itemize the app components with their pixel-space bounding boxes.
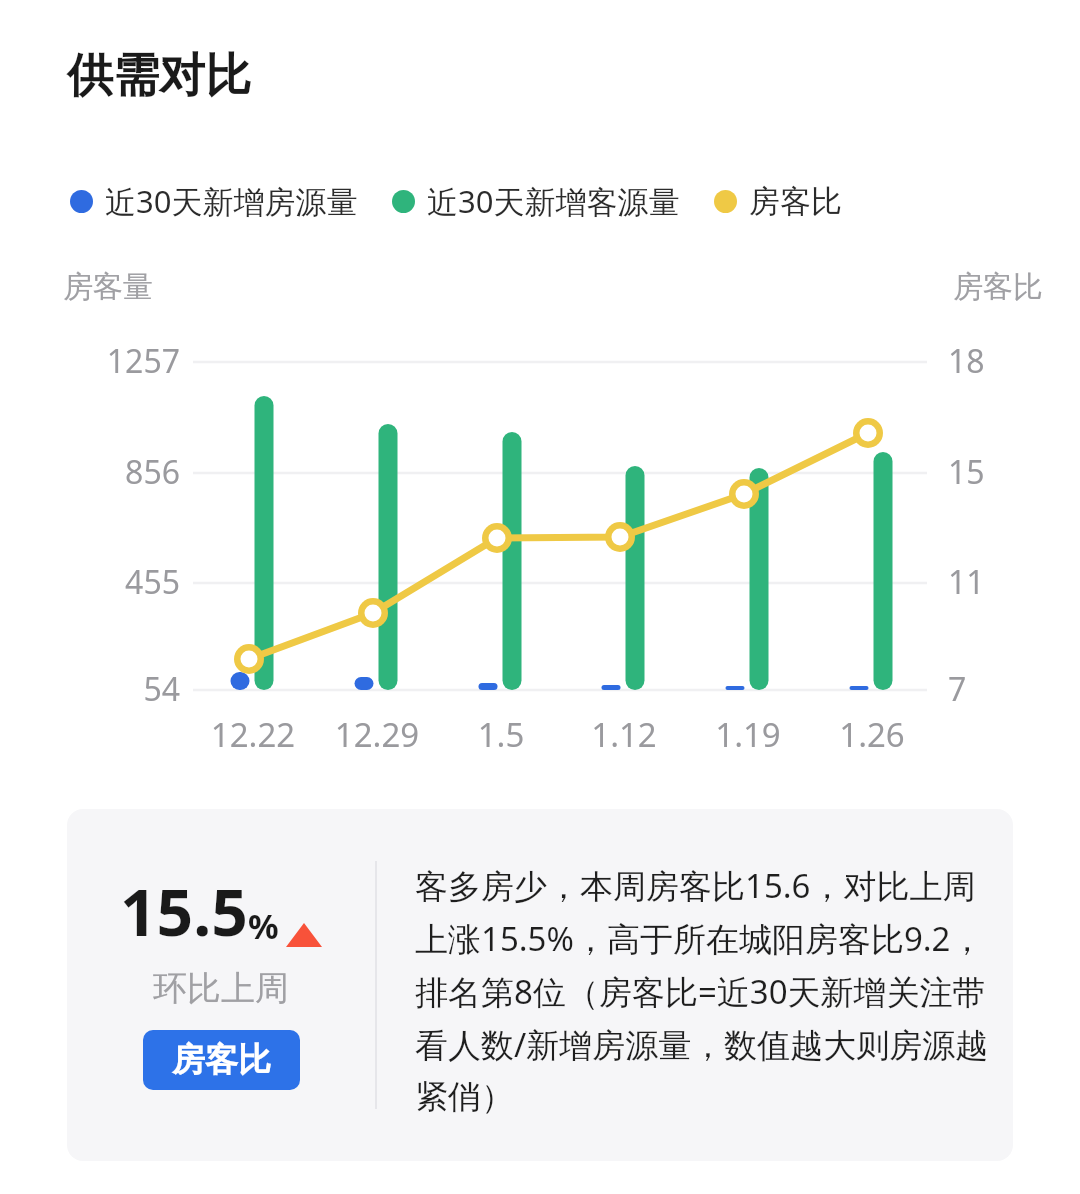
staticText: 房客比 (953, 268, 1043, 306)
staticText: % (248, 903, 279, 949)
staticText: 环比上周 (153, 967, 289, 1010)
button[interactable]: 房客比 (143, 1030, 300, 1090)
staticText: 1.19 (678, 712, 818, 757)
staticText: 1.12 (554, 712, 694, 757)
staticText: 近30天新增房源量 (105, 180, 358, 222)
button[interactable]: 近30天新增客源量 (392, 180, 680, 222)
staticText: 房客比 (172, 1039, 271, 1081)
staticText: 近30天新增客源量 (427, 180, 680, 222)
staticText: 11 (948, 560, 985, 604)
staticText: 1257 (50, 339, 180, 383)
button[interactable]: 房客比 (714, 182, 842, 221)
staticText: 54 (50, 667, 180, 711)
staticText: 1.5 (431, 712, 571, 757)
staticText: 房客比 (749, 182, 842, 221)
staticText: 1.26 (802, 712, 942, 757)
staticText: 856 (50, 450, 180, 494)
button[interactable]: 15.5 (67, 809, 1013, 1161)
staticText: 客多房少，本周房客比15.6，对比上周上涨15.5%，高于所在城阳房客比9.2，… (415, 863, 993, 1118)
staticText: 12.22 (183, 712, 323, 757)
staticText: 18 (948, 339, 985, 383)
staticText: 15.5 (120, 868, 248, 955)
staticText: 12.29 (307, 712, 447, 757)
staticText: 7 (948, 667, 967, 711)
other: 上涨 (286, 923, 322, 947)
button[interactable]: 近30天新增房源量 (70, 180, 358, 222)
staticText: 455 (50, 560, 180, 604)
staticText: 15 (948, 450, 985, 494)
staticText: 房客量 (63, 268, 153, 306)
staticText: 供需对比 (67, 47, 251, 105)
